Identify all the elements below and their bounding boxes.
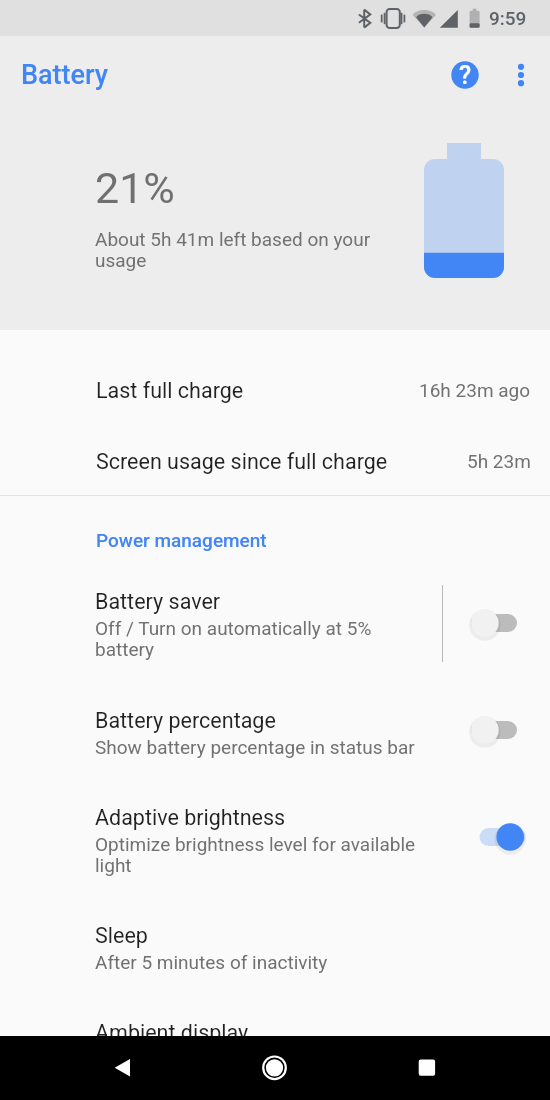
button[interactable]: Last full charge [0, 354, 550, 426]
button[interactable]: Help [441, 51, 489, 99]
button[interactable]: Power management [0, 506, 550, 566]
button[interactable]: More options [497, 51, 545, 99]
button[interactable]: Ambient display [0, 1007, 550, 1085]
staticText: 9:59 [489, 7, 527, 29]
staticText: After 5 minutes of inactivity [95, 951, 328, 973]
button[interactable]: Adaptive brightness [0, 780, 550, 886]
staticText: Ambient display [95, 1020, 249, 1045]
staticText: Adaptive brightness [95, 805, 286, 830]
button[interactable]: Adaptive brightness [464, 817, 536, 857]
button[interactable]: Battery saver [464, 603, 536, 643]
staticText: 5h 23m [467, 450, 531, 472]
staticText: Optimize brightness level for available … [95, 833, 425, 877]
staticText: Battery [21, 59, 109, 91]
button[interactable]: Screen usage since full charge [0, 425, 550, 497]
button[interactable]: Battery percentage [464, 710, 536, 750]
staticText: Off / Turn on automatically at 5% batter… [95, 617, 385, 661]
button[interactable]: Battery saver [0, 567, 550, 673]
staticText: Sleep [95, 923, 148, 948]
staticText: Show battery percentage in status bar [95, 736, 455, 758]
staticText: Screen usage since full charge [96, 449, 388, 474]
staticText: 21% [95, 163, 175, 213]
button[interactable]: Home [234, 1036, 315, 1100]
staticText: Battery saver [95, 589, 221, 614]
button[interactable]: Sleep [0, 910, 550, 988]
staticText: Last full charge [96, 378, 244, 403]
staticText: 16h 23m ago [419, 379, 531, 401]
staticText: ? [459, 61, 472, 90]
staticText: About 5h 41m left based on your usage [95, 228, 385, 272]
button[interactable]: Recent apps [387, 1036, 468, 1100]
staticText: Battery percentage [95, 708, 276, 733]
button[interactable]: Back [82, 1036, 163, 1100]
staticText: Power management [96, 529, 267, 551]
button[interactable]: Battery percentage [0, 693, 550, 771]
